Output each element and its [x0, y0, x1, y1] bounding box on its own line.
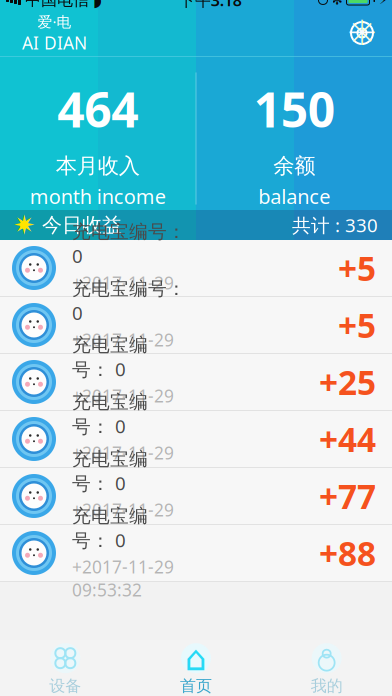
- staticText: ◗: [93, 0, 102, 10]
- button[interactable]: Settings: [340, 11, 384, 55]
- staticText: 下午3:18: [179, 0, 242, 11]
- staticText: balance: [258, 183, 330, 209]
- staticText: ⌂: [185, 638, 207, 678]
- staticText: +2017-11-29 09:53:32: [72, 555, 174, 601]
- staticText: +2017-11-29 09:51:08: [72, 271, 174, 317]
- staticText: 150: [254, 77, 335, 141]
- staticText: 充电宝编号： 0: [72, 219, 186, 268]
- staticText: 中国电信: [25, 0, 89, 10]
- button[interactable]: 充电宝编号： 0: [0, 411, 392, 467]
- staticText: 充电宝编号： 0: [72, 505, 148, 552]
- staticText: 充电宝编号： 0: [72, 276, 186, 325]
- staticText: 余额: [273, 153, 315, 179]
- button[interactable]: 我的: [261, 640, 392, 696]
- staticText: 充电宝编号： 0: [72, 448, 148, 495]
- staticText: 充电宝编号： 0: [72, 391, 148, 438]
- staticText: ✳: [347, 13, 376, 53]
- button[interactable]: ⌂: [131, 640, 261, 696]
- staticText: 本月收入: [56, 153, 140, 179]
- staticText: 首页: [180, 676, 212, 696]
- staticText: +88: [319, 531, 376, 575]
- button[interactable]: 充电宝编号： 0: [0, 354, 392, 410]
- staticText: +2017-11-29 09:51:53: [72, 441, 174, 487]
- staticText: +2017-11-29 09:51:24: [72, 328, 174, 374]
- staticText: 充电宝编号： 0: [72, 334, 148, 381]
- button[interactable]: 充电宝编号： 0: [0, 525, 392, 581]
- staticText: +2017-11-29 09:52:10: [72, 498, 174, 544]
- staticText: 464: [57, 77, 138, 141]
- staticText: ⚡︎: [379, 0, 387, 7]
- staticText: 爱·电: [37, 12, 71, 31]
- button[interactable]: 设备: [0, 640, 131, 696]
- staticText: +77: [319, 474, 376, 518]
- staticText: month income: [30, 183, 166, 209]
- button[interactable]: 充电宝编号： 0: [0, 240, 392, 296]
- staticText: 设备: [49, 676, 81, 696]
- staticText: ✷: [13, 210, 35, 240]
- button[interactable]: 充电宝编号： 0: [0, 297, 392, 353]
- staticText: +2017-11-29 09:51:42: [72, 384, 174, 430]
- staticText: +44: [319, 417, 376, 461]
- staticText: 我的: [311, 676, 343, 696]
- staticText: AI DIAN: [22, 31, 87, 54]
- staticText: 今日收益: [42, 213, 122, 237]
- staticText: 共计 : 330: [292, 213, 378, 237]
- staticText: +25: [319, 360, 376, 404]
- staticText: +5: [338, 303, 376, 347]
- button[interactable]: 充电宝编号： 0: [0, 468, 392, 524]
- staticText: +5: [338, 246, 376, 290]
- staticText: ✻: [331, 0, 342, 7]
